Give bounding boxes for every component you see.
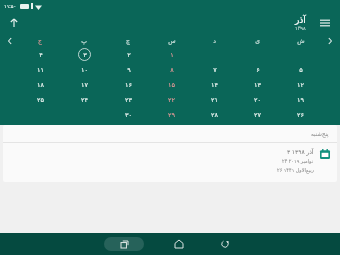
button[interactable]: ۲۱ — [208, 93, 221, 106]
staticText: ۲۹ — [168, 111, 175, 119]
button[interactable]: ۲۳ — [122, 93, 135, 106]
button[interactable]: ۱۰ — [78, 63, 91, 76]
staticText: ۲ — [127, 51, 131, 59]
staticText: ۲۰ — [254, 96, 261, 104]
button[interactable]: ۶ — [251, 63, 264, 76]
staticText: ۲۳ — [125, 96, 132, 104]
button[interactable]: پنج‌شنبه — [3, 125, 337, 182]
button[interactable]: Previous month — [322, 34, 338, 47]
staticText: ۱۴ — [211, 81, 218, 89]
button[interactable]: ۲۰ — [251, 93, 264, 106]
staticText: ۲۲ — [168, 96, 175, 104]
button[interactable]: ۹ — [122, 63, 135, 76]
staticText: د — [213, 37, 216, 44]
button[interactable]: Home — [168, 233, 190, 255]
staticText: ۸ — [170, 66, 174, 74]
staticText: ۲۱ — [211, 96, 218, 104]
staticText: ۱۵ — [168, 81, 175, 89]
button[interactable]: ۲۴ — [78, 93, 91, 106]
staticText: ۷ — [213, 66, 217, 74]
staticText: ۳ آذر ۱۳۹۸ — [287, 148, 314, 156]
button[interactable]: ۳ — [78, 48, 91, 61]
staticText: س — [168, 37, 176, 44]
staticText: ۱۱ — [37, 66, 44, 74]
button[interactable]: ۱۶ — [122, 78, 135, 91]
staticText: ۲۴ — [81, 96, 88, 104]
staticText: پنج‌شنبه — [311, 131, 329, 137]
other: Calendar — [319, 148, 330, 159]
button[interactable]: ۳۰ — [122, 108, 135, 121]
button[interactable]: آذر — [295, 15, 306, 31]
button[interactable]: ۱۲ — [294, 78, 307, 91]
button[interactable]: ۲۲ — [165, 93, 178, 106]
staticText: ۲۸ — [211, 111, 218, 119]
staticText: ۲۶ — [297, 111, 304, 119]
staticText: پ — [81, 37, 87, 44]
staticText: ۱۰ — [81, 66, 88, 74]
staticText: ۱۸ — [37, 81, 44, 89]
staticText: ۶ — [256, 66, 260, 74]
button[interactable]: ۱ — [165, 48, 178, 61]
staticText: ی — [255, 37, 260, 44]
button[interactable]: ۱۵ — [165, 78, 178, 91]
staticText: ۱۱:۵۰ — [4, 3, 17, 10]
staticText: ۱۲ — [297, 81, 304, 89]
staticText: ۹ — [127, 66, 131, 74]
button[interactable]: ۱۴ — [208, 78, 221, 91]
staticText: چ — [126, 37, 130, 44]
staticText: ۵ — [299, 66, 303, 74]
staticText: ۱۳۹۸ — [295, 25, 306, 31]
staticText: ۲۶ ربیع‌الاول ۱۴۴۱ — [277, 167, 314, 174]
button[interactable]: ۱۷ — [78, 78, 91, 91]
button[interactable]: ۱۱ — [34, 63, 47, 76]
button[interactable]: Next month — [2, 34, 18, 47]
button[interactable]: ۲۵ — [34, 93, 47, 106]
button[interactable]: ۲۸ — [208, 108, 221, 121]
button[interactable]: ۵ — [294, 63, 307, 76]
button[interactable]: Recent apps — [104, 237, 144, 251]
button[interactable]: ۷ — [208, 63, 221, 76]
staticText: ۲۷ — [254, 111, 261, 119]
button[interactable]: ۴ — [34, 48, 47, 61]
staticText: ۳ — [83, 51, 87, 59]
button[interactable]: ۲۹ — [165, 108, 178, 121]
button[interactable]: ۲۷ — [251, 108, 264, 121]
staticText: ۲۴ نوامبر ۲۰۱۹ — [282, 158, 314, 165]
button[interactable]: Menu — [317, 15, 333, 31]
staticText: ۴ — [39, 51, 43, 59]
button[interactable]: ۱۸ — [34, 78, 47, 91]
staticText: ۱۶ — [125, 81, 132, 89]
staticText: ج — [38, 37, 42, 44]
staticText: ۱ — [170, 51, 174, 59]
button[interactable]: ۱۳ — [251, 78, 264, 91]
button[interactable]: ۱۹ — [294, 93, 307, 106]
button[interactable]: ۲ — [122, 48, 135, 61]
staticText: ۱۷ — [81, 81, 88, 89]
staticText: ش — [297, 37, 305, 44]
staticText: ۳۰ — [125, 111, 132, 119]
staticText: ۱۳ — [254, 81, 261, 89]
button[interactable]: ۲۶ — [294, 108, 307, 121]
staticText: آذر — [295, 15, 306, 25]
staticText: ۱۹ — [297, 96, 304, 104]
button[interactable]: Back — [214, 233, 236, 255]
button[interactable]: Go to today — [6, 15, 22, 31]
button[interactable]: ۸ — [165, 63, 178, 76]
staticText: ۲۵ — [37, 96, 44, 104]
